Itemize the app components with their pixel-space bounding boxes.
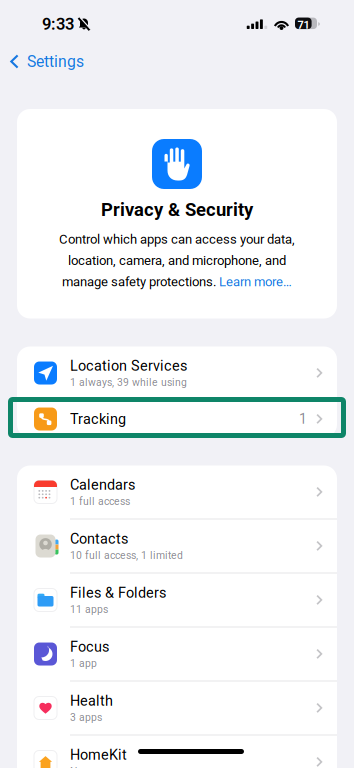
staticText: 1 bbox=[299, 411, 307, 427]
button[interactable]: Contacts bbox=[17, 519, 337, 572]
staticText: HomeKit bbox=[70, 746, 127, 763]
staticText: 1 app bbox=[70, 657, 97, 669]
staticText: Files & Folders bbox=[70, 584, 166, 601]
staticText: Control which apps can access your data, bbox=[59, 232, 295, 247]
button[interactable]: Focus bbox=[17, 627, 337, 680]
staticText: 1 always, 39 while using bbox=[70, 376, 187, 388]
button[interactable]: Settings bbox=[0, 45, 84, 78]
staticText: Privacy & Security bbox=[101, 199, 253, 221]
staticText: Settings bbox=[27, 52, 84, 71]
staticText: Calendars bbox=[70, 476, 135, 493]
staticText: Learn more… bbox=[219, 274, 292, 289]
staticText: 71 bbox=[297, 19, 309, 31]
staticText: 1 full access bbox=[70, 495, 130, 507]
staticText: 10 full access, 1 limited bbox=[70, 549, 183, 561]
button[interactable]: Health bbox=[17, 681, 337, 734]
staticText: None bbox=[70, 765, 95, 768]
staticText: location, camera, and microphone, and bbox=[68, 253, 286, 268]
staticText: Location Services bbox=[70, 357, 187, 374]
staticText: 9:33 bbox=[42, 14, 74, 34]
staticText: 11 apps bbox=[70, 603, 108, 615]
button[interactable]: HomeKit bbox=[17, 735, 337, 768]
button[interactable]: Location Services bbox=[17, 346, 337, 399]
staticText: Tracking bbox=[70, 411, 126, 427]
staticText: Contacts bbox=[70, 530, 128, 547]
button[interactable]: Tracking bbox=[17, 400, 337, 437]
button[interactable]: Files & Folders bbox=[17, 573, 337, 626]
button[interactable]: Calendars bbox=[17, 465, 337, 518]
staticText: 3 apps bbox=[70, 711, 102, 723]
staticText: Focus bbox=[70, 638, 109, 655]
button[interactable]: Learn more… bbox=[219, 274, 292, 289]
staticText: manage safety protections. bbox=[62, 274, 219, 289]
staticText: Health bbox=[70, 692, 113, 709]
